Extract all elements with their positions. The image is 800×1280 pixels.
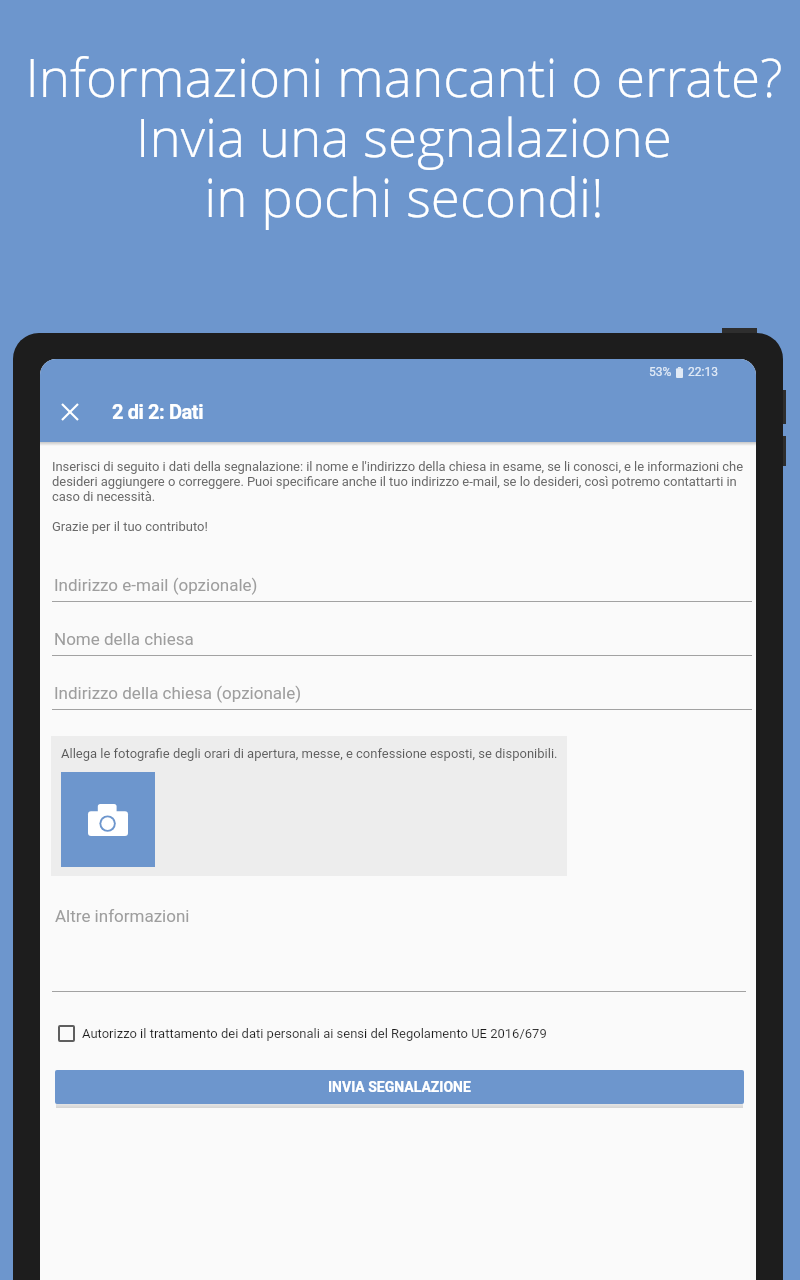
button[interactable]: Nome della chiesa xyxy=(52,625,752,657)
staticText: Nome della chiesa xyxy=(54,629,194,649)
staticText: 53% xyxy=(649,365,672,379)
staticText: Inserisci di seguito i dati della segnal… xyxy=(52,459,752,504)
button[interactable]: Indirizzo e-mail (opzionale) xyxy=(52,571,752,603)
staticText: 2 di 2: Dati xyxy=(112,400,204,423)
staticText: Indirizzo della chiesa (opzionale) xyxy=(54,683,302,703)
staticText: Informazioni mancanti o errate? Invia un… xyxy=(8,40,800,233)
button[interactable]: INVIA SEGNALAZIONE xyxy=(55,1070,744,1104)
staticText: Autorizzo il trattamento dei dati person… xyxy=(82,1026,547,1041)
staticText: Allega le fotografie degli orari di aper… xyxy=(61,746,558,761)
button[interactable]: Indirizzo della chiesa (opzionale) xyxy=(52,679,752,711)
button[interactable]: Aggiungi foto xyxy=(61,772,155,867)
staticText: Grazie per il tuo contributo! xyxy=(52,519,208,534)
button[interactable]: Autorizzo il trattamento dei dati person… xyxy=(52,1016,612,1050)
staticText: INVIA SEGNALAZIONE xyxy=(328,1079,471,1095)
button[interactable]: Chiudi xyxy=(46,388,94,436)
staticText: Altre informazioni xyxy=(55,906,190,926)
staticText: 22:13 xyxy=(688,365,718,379)
staticText: Indirizzo e-mail (opzionale) xyxy=(54,575,258,595)
